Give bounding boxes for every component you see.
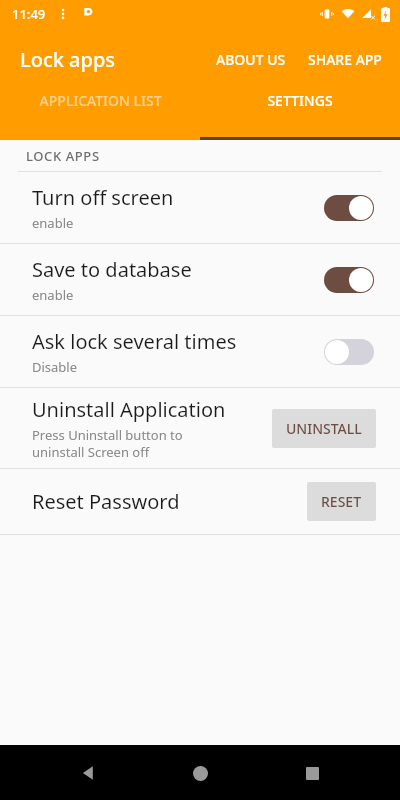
staticText: Reset Password: [32, 488, 180, 515]
button[interactable]: Home: [176, 749, 224, 797]
staticText: Lock apps: [20, 46, 116, 73]
button[interactable]: SHARE APP: [300, 44, 390, 75]
staticText: APPLICATION LIST: [39, 91, 162, 110]
button[interactable]: Recent apps: [288, 749, 336, 797]
staticText: SHARE APP: [308, 50, 382, 69]
staticText: enable: [32, 214, 74, 232]
button[interactable]: Save to database: [0, 244, 400, 315]
button[interactable]: ABOUT US: [208, 44, 294, 75]
staticText: Save to database: [32, 256, 192, 283]
staticText: Turn off screen: [32, 184, 174, 211]
staticText: LOCK APPS: [26, 147, 100, 165]
button[interactable]: UNINSTALL: [272, 409, 376, 448]
button[interactable]: Turn off screen: [0, 172, 400, 243]
staticText: 11:49: [12, 5, 46, 23]
staticText: Press Uninstall button to uninstall Scre…: [32, 426, 183, 461]
button[interactable]: SETTINGS: [200, 91, 400, 110]
staticText: Disable: [32, 358, 78, 376]
button[interactable]: Back: [64, 749, 112, 797]
staticText: RESET: [321, 492, 362, 511]
staticText: ABOUT US: [216, 50, 286, 69]
staticText: enable: [32, 286, 74, 304]
button[interactable]: Ask lock several times: [0, 316, 400, 387]
staticText: Ask lock several times: [32, 328, 237, 355]
staticText: Uninstall Application: [32, 396, 226, 423]
staticText: SETTINGS: [267, 91, 333, 110]
staticText: UNINSTALL: [286, 419, 362, 438]
button[interactable]: RESET: [307, 482, 376, 521]
button[interactable]: APPLICATION LIST: [0, 91, 200, 110]
